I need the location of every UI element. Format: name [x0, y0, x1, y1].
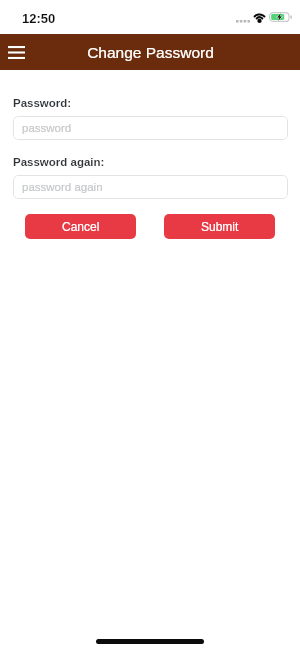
staticText: password again	[22, 181, 103, 194]
staticText: Submit	[201, 220, 239, 233]
staticText: password	[22, 122, 72, 135]
staticText: 12:50	[22, 11, 56, 26]
staticText: Cancel	[62, 220, 100, 233]
button[interactable]: Submit	[164, 214, 275, 239]
button[interactable]: Cancel	[25, 214, 136, 239]
button[interactable]: Open navigation menu	[0, 36, 32, 68]
button[interactable]: password again	[13, 175, 288, 199]
staticText: Password:	[13, 97, 72, 110]
button[interactable]: password	[13, 116, 288, 140]
staticText: Password again:	[13, 156, 105, 169]
staticText: Change Password	[87, 44, 214, 61]
